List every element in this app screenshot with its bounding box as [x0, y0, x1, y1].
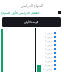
- staticText: درس ٣: [45, 39, 53, 43]
- staticText: درس ١: [45, 31, 53, 35]
- staticText: درس ٥: [45, 47, 53, 51]
- button[interactable]: درس ٨: [0, 59, 64, 63]
- staticText: درس ٤: [45, 43, 53, 47]
- staticText: درس ٩: [45, 63, 53, 67]
- button[interactable]: درس ٤: [0, 43, 64, 47]
- staticText: درس ٦: [45, 51, 53, 55]
- staticText: المنهاج الدراسي: [0, 3, 64, 8]
- staticText: درس ٧: [45, 55, 53, 59]
- staticText: درس ٨: [45, 59, 53, 63]
- button[interactable]: درس ٣: [0, 39, 64, 43]
- button[interactable]: درس ١: [0, 31, 64, 35]
- button[interactable]: درس ٦: [0, 51, 64, 55]
- staticText: الوحدة الأولى: [24, 20, 39, 24]
- staticText: الفصل الدراسي الأول للمنهاج: [1, 11, 40, 15]
- button[interactable]: درس ٢: [0, 35, 64, 39]
- button[interactable]: الوحدة الأولى: [2, 17, 61, 27]
- button[interactable]: درس ٧: [0, 55, 64, 59]
- button[interactable]: درس ٥: [0, 47, 64, 51]
- staticText: درس ١٠: [43, 67, 53, 71]
- staticText: درس ٢: [45, 35, 53, 39]
- button[interactable]: درس ٩: [0, 63, 64, 67]
- button[interactable]: درس ١٠: [0, 67, 64, 71]
